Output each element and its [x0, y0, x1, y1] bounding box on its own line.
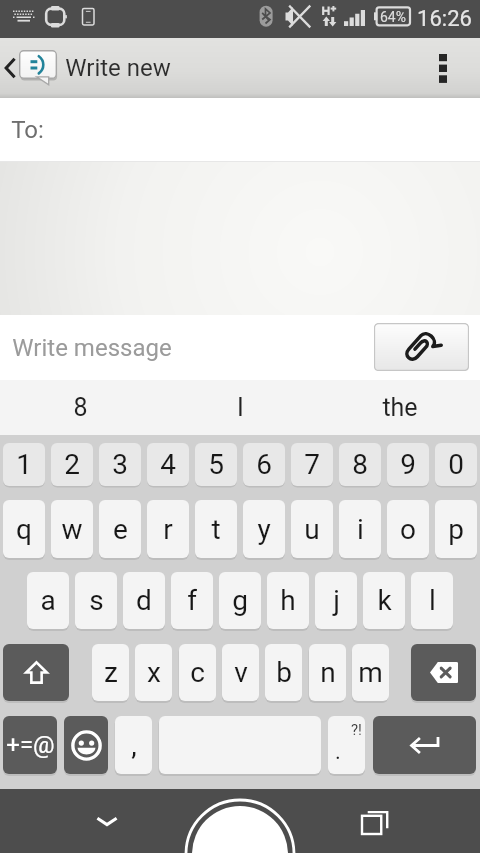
staticText: v: [234, 656, 248, 689]
staticText: k: [377, 584, 392, 617]
button[interactable]: k: [363, 572, 405, 629]
button[interactable]: Attach: [374, 323, 469, 371]
button[interactable]: 3: [99, 443, 141, 486]
staticText: ,: [131, 729, 137, 762]
button[interactable]: c: [179, 644, 216, 701]
staticText: .: [335, 739, 341, 765]
button[interactable]: 1: [3, 443, 45, 486]
staticText: 8: [73, 393, 88, 422]
button[interactable]: q: [3, 500, 45, 558]
staticText: 0: [448, 448, 464, 481]
button[interactable]: f: [171, 572, 213, 629]
staticText: l: [429, 584, 436, 617]
button[interactable]: x: [135, 644, 172, 701]
button[interactable]: Emoji: [64, 716, 108, 774]
staticText: 1: [16, 448, 32, 481]
button[interactable]: Navigate up: [0, 38, 20, 98]
button[interactable]: i: [339, 500, 381, 558]
button[interactable]: 6: [243, 443, 285, 486]
staticText: To:: [11, 116, 44, 144]
button[interactable]: Enter: [373, 716, 476, 774]
staticText: y: [257, 513, 271, 546]
button[interactable]: ,: [115, 716, 152, 774]
staticText: 16:26: [417, 6, 472, 32]
button[interactable]: t: [195, 500, 237, 558]
staticText: d: [136, 584, 152, 617]
staticText: 3: [112, 448, 128, 481]
staticText: b: [276, 656, 292, 689]
staticText: s: [89, 584, 104, 617]
staticText: i: [357, 513, 364, 546]
staticText: 6: [256, 448, 272, 481]
staticText: u: [304, 513, 320, 546]
button[interactable]: 9: [387, 443, 429, 486]
button[interactable]: +=@: [3, 716, 57, 774]
button[interactable]: 5: [195, 443, 237, 486]
button[interactable]: To:: [0, 98, 480, 162]
staticText: j: [333, 584, 340, 617]
staticText: o: [400, 513, 416, 546]
staticText: f: [187, 584, 197, 617]
button[interactable]: n: [309, 644, 346, 701]
staticText: I: [237, 393, 244, 422]
button[interactable]: h: [267, 572, 309, 629]
staticText: q: [16, 513, 32, 546]
staticText: g: [232, 584, 248, 617]
staticText: h: [280, 584, 296, 617]
staticText: p: [448, 513, 464, 546]
button[interactable]: w: [51, 500, 93, 558]
staticText: e: [113, 513, 128, 546]
staticText: t: [211, 513, 221, 546]
button[interactable]: the: [320, 380, 480, 435]
button[interactable]: 4: [147, 443, 189, 486]
button[interactable]: s: [75, 572, 117, 629]
staticText: c: [190, 656, 205, 689]
button[interactable]: j: [315, 572, 357, 629]
staticText: the: [382, 393, 418, 422]
button[interactable]: b: [265, 644, 302, 701]
button[interactable]: u: [291, 500, 333, 558]
staticText: 9: [400, 448, 416, 481]
staticText: x: [147, 656, 161, 689]
staticText: n: [320, 656, 336, 689]
button[interactable]: g: [219, 572, 261, 629]
staticText: Write new: [65, 54, 171, 82]
button[interactable]: Hide keyboard: [83, 789, 131, 853]
button[interactable]: a: [27, 572, 69, 629]
staticText: 8: [352, 448, 368, 481]
button[interactable]: v: [222, 644, 259, 701]
button[interactable]: r: [147, 500, 189, 558]
button[interactable]: 0: [435, 443, 477, 486]
staticText: 7: [304, 448, 320, 481]
staticText: a: [40, 584, 56, 617]
button[interactable]: l: [411, 572, 453, 629]
staticText: ?!: [351, 721, 362, 739]
button[interactable]: 8: [0, 380, 160, 435]
button[interactable]: z: [92, 644, 129, 701]
staticText: r: [163, 513, 173, 546]
button[interactable]: m: [352, 644, 389, 701]
button[interactable]: y: [243, 500, 285, 558]
staticText: w: [61, 513, 83, 546]
button[interactable]: Period: [328, 716, 365, 774]
button[interactable]: e: [99, 500, 141, 558]
button[interactable]: 8: [339, 443, 381, 486]
staticText: +=@: [6, 731, 55, 759]
button[interactable]: d: [123, 572, 165, 629]
staticText: z: [104, 656, 118, 689]
button[interactable]: Delete: [411, 644, 476, 701]
button[interactable]: 7: [291, 443, 333, 486]
button[interactable]: Shift: [3, 644, 69, 701]
button[interactable]: p: [435, 500, 477, 558]
button[interactable]: Recent apps: [351, 789, 399, 853]
staticText: 64%: [380, 9, 406, 24]
staticText: m: [358, 656, 383, 689]
button[interactable]: 2: [51, 443, 93, 486]
staticText: 5: [208, 448, 224, 481]
button[interactable]: o: [387, 500, 429, 558]
button[interactable]: I: [160, 380, 320, 435]
staticText: 2: [64, 448, 80, 481]
staticText: Write message: [12, 334, 172, 362]
button[interactable]: More options: [419, 38, 467, 98]
